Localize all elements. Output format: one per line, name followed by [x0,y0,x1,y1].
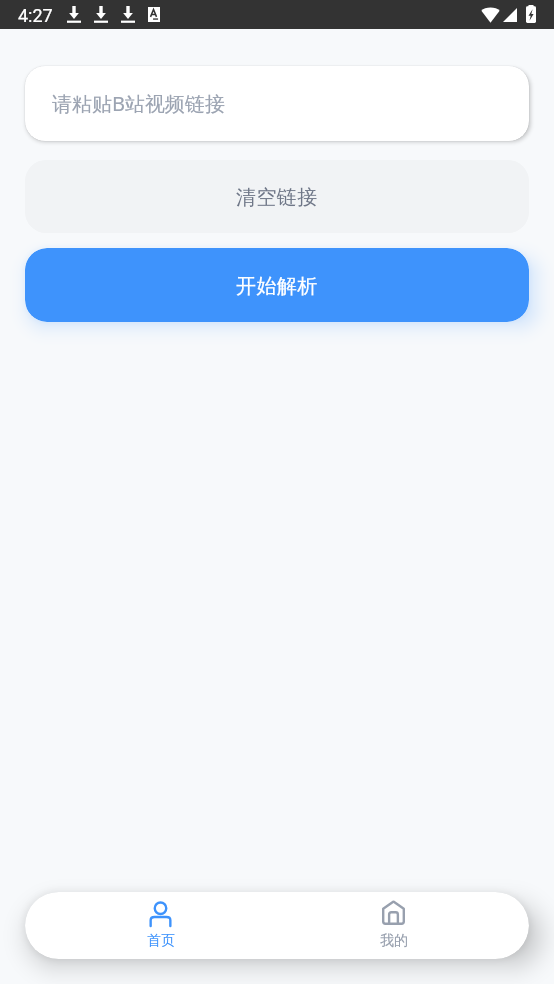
staticText: 4:27 [18,5,53,26]
button[interactable]: 开始解析 [25,248,529,322]
staticText: 首页 [147,932,175,950]
staticText: 请粘贴B站视频链接 [52,90,225,117]
staticText: 开始解析 [236,274,318,299]
staticText: 清空链接 [236,185,318,210]
button[interactable]: 请粘贴B站视频链接 [25,66,529,141]
button[interactable]: 清空链接 [25,160,529,233]
button[interactable]: 首页 [44,892,277,959]
button[interactable]: 我的 [277,892,510,959]
staticText: 我的 [380,932,408,950]
